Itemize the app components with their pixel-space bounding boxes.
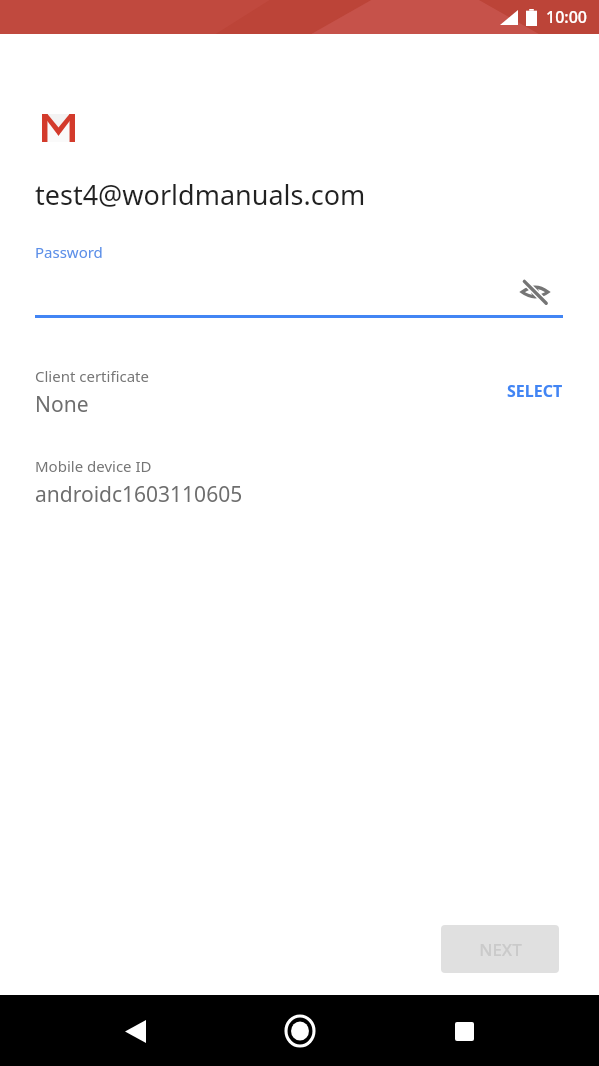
- staticText: Mobile device ID: [35, 456, 152, 476]
- button[interactable]: Home: [269, 1000, 331, 1062]
- staticText: androidc1603110605: [35, 480, 243, 509]
- staticText: test4@worldmanuals.com: [35, 176, 366, 213]
- staticText: SELECT: [507, 380, 563, 402]
- button[interactable]: Show password: [511, 268, 559, 316]
- button[interactable]: Recent apps: [433, 1000, 495, 1062]
- button[interactable]: Client certificate: [0, 358, 599, 424]
- button[interactable]: SELECT: [491, 372, 579, 410]
- staticText: 10:00: [546, 6, 587, 28]
- button[interactable]: Back: [104, 1000, 166, 1062]
- staticText: NEXT: [479, 938, 522, 961]
- button[interactable]: [35, 268, 563, 318]
- staticText: None: [35, 390, 89, 419]
- button[interactable]: NEXT: [441, 925, 559, 973]
- staticText: Password: [35, 242, 103, 262]
- staticText: Client certificate: [35, 366, 149, 386]
